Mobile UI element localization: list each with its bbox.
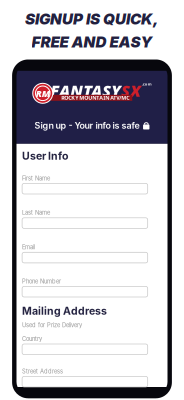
staticText: Email [22, 244, 35, 251]
staticText: .com [142, 81, 152, 87]
staticText: User Info [22, 150, 68, 162]
staticText: SX [121, 80, 141, 101]
staticText: ROCKY MOUNTAIN ATV/MC [61, 94, 129, 101]
staticText: Last Name [22, 209, 50, 216]
staticText: Sign up - Your info is safe [34, 120, 139, 131]
staticText: FANTASY [50, 80, 121, 101]
staticText: Used for Prize Delivery [22, 322, 82, 329]
staticText: FREE AND EASY [31, 33, 152, 51]
staticText: Street Address [22, 368, 63, 375]
staticText: First Name [22, 175, 50, 182]
staticText: SIGNUP IS QUICK, [25, 10, 159, 28]
staticText: Mailing Address [22, 305, 107, 317]
staticText: Country [22, 335, 42, 342]
staticText: Phone Number [22, 278, 61, 285]
staticText: RM [36, 87, 50, 99]
